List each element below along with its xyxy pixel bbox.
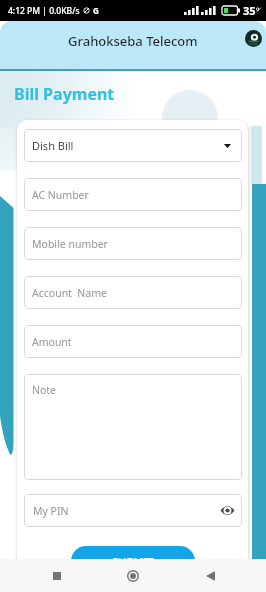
button[interactable]: Profile [245, 30, 262, 47]
staticText: Account Name [32, 286, 107, 300]
button[interactable]: Recents [37, 559, 77, 592]
staticText: My PIN [33, 504, 69, 518]
button[interactable]: My PIN [24, 494, 242, 527]
button[interactable]: Account Name [24, 276, 242, 309]
staticText: SUBMIT [112, 554, 154, 569]
staticText: G [93, 5, 99, 16]
staticText: Dish Bill [32, 138, 74, 153]
staticText: Mobile number [32, 237, 108, 251]
staticText: AC Number [32, 188, 89, 202]
button[interactable]: Dish Bill [24, 129, 242, 162]
button[interactable]: Back [190, 559, 230, 592]
button[interactable]: Amount [24, 325, 242, 358]
button[interactable]: SUBMIT [71, 546, 195, 576]
staticText: Amount [32, 335, 72, 349]
button[interactable]: Mobile number [24, 227, 242, 260]
staticText: Grahokseba Telecom [68, 32, 198, 50]
staticText: 35 [243, 3, 256, 18]
button[interactable]: Show PIN [220, 503, 235, 518]
button[interactable]: Home [113, 559, 153, 592]
staticText: Bill Payment [14, 83, 115, 105]
staticText: Note [32, 383, 57, 397]
button[interactable]: AC Number [24, 178, 242, 211]
staticText: 4:12 PM | 0.0KB/s [8, 5, 80, 17]
button[interactable]: Note [24, 374, 242, 480]
